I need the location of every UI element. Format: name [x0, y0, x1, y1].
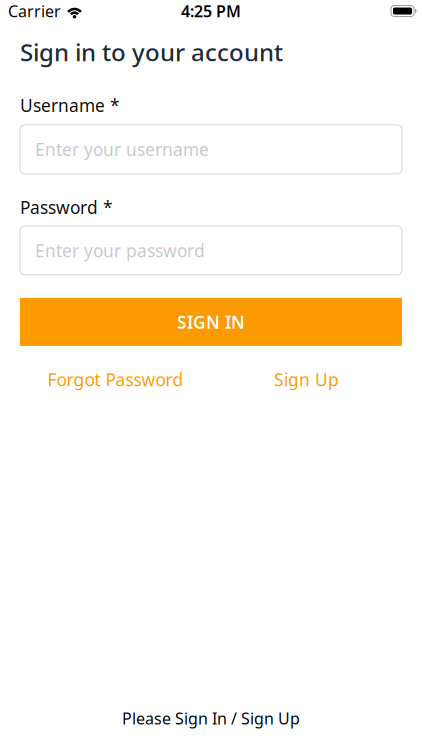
staticText: Enter your username	[35, 138, 209, 161]
button[interactable]: Forgot Password	[47, 368, 183, 391]
staticText: Sign in to your account	[20, 36, 283, 68]
staticText: Carrier	[8, 0, 61, 22]
staticText: 4:25 PM	[181, 0, 241, 22]
staticText: Sign Up	[274, 368, 339, 391]
staticText: Please Sign In / Sign Up	[122, 708, 300, 729]
staticText: Password *	[20, 196, 113, 219]
staticText: Enter your password	[35, 239, 205, 262]
staticText: Username *	[20, 94, 120, 117]
button[interactable]: SIGN IN	[20, 298, 402, 346]
button[interactable]: Sign Up	[274, 368, 339, 391]
staticText: SIGN IN	[177, 310, 245, 333]
button[interactable]: Please Sign In / Sign Up	[122, 708, 300, 729]
staticText: Forgot Password	[47, 368, 183, 391]
